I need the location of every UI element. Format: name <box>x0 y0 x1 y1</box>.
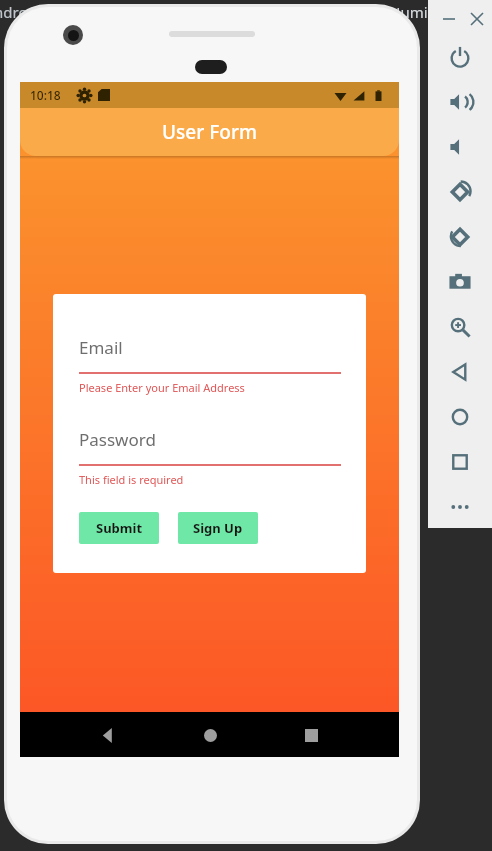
staticText: Numi <box>389 2 428 22</box>
button[interactable]: Home <box>441 398 479 436</box>
button[interactable]: Home <box>188 713 232 757</box>
button[interactable]: Sign Up <box>178 512 258 544</box>
staticText: This field is required <box>79 472 184 487</box>
button[interactable]: Rotate right <box>441 218 479 256</box>
button[interactable]: Back <box>441 353 479 391</box>
button[interactable]: Back <box>86 713 130 757</box>
button[interactable]: Take screenshot <box>441 263 479 301</box>
button[interactable]: Rotate left <box>441 173 479 211</box>
button[interactable]: Overview <box>441 443 479 481</box>
staticText: Submit <box>96 519 143 537</box>
staticText: User Form <box>162 119 257 145</box>
staticText: Please Enter your Email Address <box>79 380 245 395</box>
button[interactable]: More <box>441 488 479 526</box>
button[interactable]: Minimize <box>436 6 462 32</box>
button[interactable]: Zoom <box>441 308 479 346</box>
button[interactable]: Volume down <box>441 128 479 166</box>
staticText: ndro <box>0 2 28 22</box>
staticText: Sign Up <box>193 519 243 537</box>
staticText: Password <box>79 428 156 451</box>
button[interactable]: Overview <box>289 713 333 757</box>
staticText: 10:18 <box>30 87 61 103</box>
button[interactable]: Close <box>464 6 490 32</box>
button[interactable]: Submit <box>79 512 159 544</box>
button[interactable]: Power <box>441 38 479 76</box>
staticText: Email <box>79 336 123 359</box>
button[interactable]: Volume up <box>441 83 479 121</box>
